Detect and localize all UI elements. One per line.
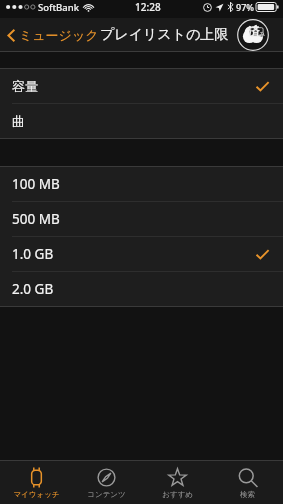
button[interactable]: 100 MB [0,167,283,201]
button[interactable]: 曲 [0,104,283,138]
staticText: プレイリストの上限 [100,26,229,44]
staticText: 1.0 GB [12,245,54,263]
staticText: 97% [236,1,254,13]
staticText: SoftBank [38,1,79,14]
button[interactable]: 1.0 GB [0,237,283,271]
staticText: コンテンツ [87,490,126,499]
staticText: ミュージック [19,27,99,43]
button[interactable]: ミュージック [5,23,101,47]
button[interactable]: コンテンツ [72,464,140,502]
button[interactable]: 500 MB [0,202,283,236]
button[interactable]: マイウォッチ [2,464,70,502]
staticText: おすすめ [162,490,193,499]
staticText: 済 [248,24,259,38]
staticText: 曲 [12,113,25,129]
button[interactable]: 容量 [0,69,283,103]
staticText: 12:28 [135,0,161,14]
staticText: マイウォッチ [13,490,60,499]
staticText: 100 MB [12,175,60,193]
staticText: 2.0 GB [12,280,54,298]
staticText: 500 MB [12,210,60,228]
staticText: み [259,30,266,38]
button[interactable]: 検索 [213,464,281,502]
staticText: 検索 [240,490,255,499]
button[interactable]: おすすめ [143,464,211,502]
button[interactable]: 2.0 GB [0,272,283,306]
staticText: 容量 [12,78,38,94]
